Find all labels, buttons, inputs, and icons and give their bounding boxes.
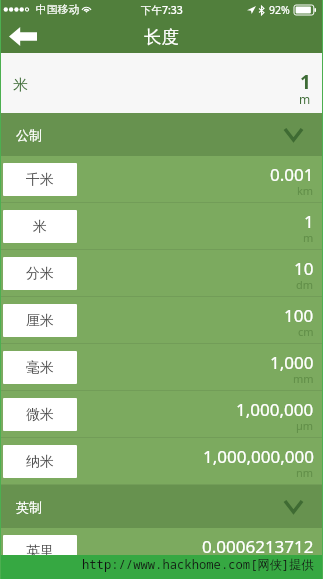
staticText: http://www.hackhome.com[网侠]提供 [82, 556, 314, 573]
staticText: 0.001 [270, 163, 314, 186]
staticText: 92% [269, 3, 290, 17]
staticText: 长度 [144, 26, 179, 48]
staticText: 0.0006213712 [202, 535, 314, 558]
staticText: 1 [304, 210, 314, 233]
staticText: 中国移动 [36, 3, 80, 17]
staticText: mm [293, 371, 314, 386]
staticText: 公制 [16, 127, 42, 143]
button[interactable]: 米 [0, 53, 323, 113]
button[interactable]: 千米 [0, 156, 323, 203]
staticText: 下午7:33 [141, 3, 183, 17]
button[interactable]: 公制 [0, 113, 323, 156]
staticText: 米 [33, 218, 47, 236]
staticText: m [299, 91, 311, 107]
staticText: 分米 [26, 265, 54, 283]
staticText: m [303, 230, 314, 245]
staticText: 1,000 [270, 351, 314, 374]
button[interactable]: 微米 [0, 391, 323, 438]
button[interactable]: Back [0, 20, 48, 53]
staticText: 微米 [26, 406, 54, 424]
staticText: 纳米 [26, 453, 54, 471]
button[interactable]: 纳米 [0, 438, 323, 485]
staticText: 100 [284, 304, 314, 327]
button[interactable]: 英制 [0, 485, 323, 528]
staticText: cm [298, 324, 314, 339]
staticText: mi [300, 555, 314, 570]
staticText: 1,000,000 [236, 398, 314, 421]
staticText: 毫米 [26, 359, 54, 377]
staticText: 千米 [26, 171, 54, 189]
staticText: nm [296, 465, 314, 480]
staticText: 10 [294, 257, 314, 280]
staticText: 1 [300, 69, 311, 95]
button[interactable]: 毫米 [0, 344, 323, 391]
button[interactable]: 米 [0, 203, 323, 250]
button[interactable]: 厘米 [0, 297, 323, 344]
staticText: µm [296, 418, 314, 433]
staticText: dm [296, 277, 314, 292]
staticText: 米 [13, 76, 28, 95]
staticText: 英里 [26, 543, 54, 561]
staticText: km [297, 183, 314, 198]
button[interactable]: 英里 [0, 528, 323, 575]
staticText: 厘米 [26, 312, 54, 330]
staticText: 1,000,000,000 [203, 445, 314, 468]
button[interactable]: 分米 [0, 250, 323, 297]
staticText: 英制 [16, 499, 42, 515]
